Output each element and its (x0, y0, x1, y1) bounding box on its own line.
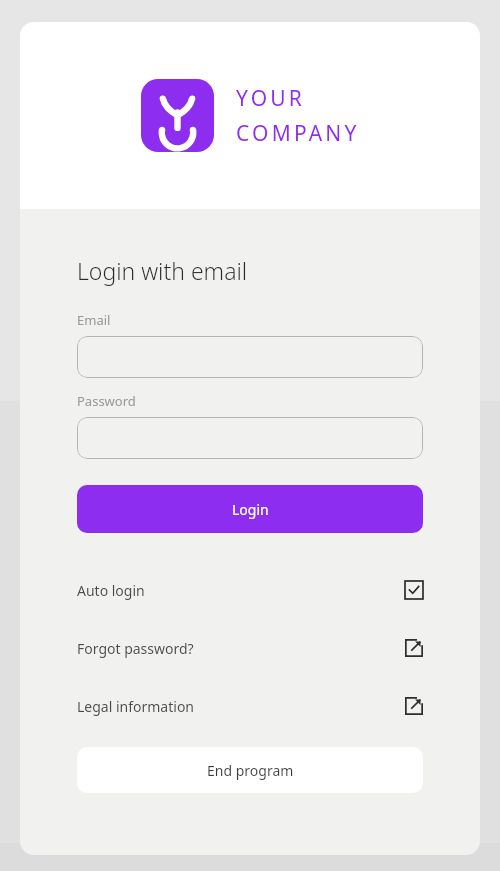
staticText: Login with email (77, 255, 248, 286)
button[interactable]: End program (77, 747, 423, 793)
staticText: Email (77, 311, 111, 329)
staticText: COMPANY (236, 119, 360, 148)
staticText: End program (207, 761, 294, 780)
other: Open link (405, 697, 423, 715)
button[interactable]: Auto login (77, 575, 423, 605)
button[interactable] (77, 336, 423, 378)
button[interactable] (77, 417, 423, 459)
staticText: YOUR (236, 84, 306, 113)
other: Company logo (141, 79, 214, 152)
staticText: Password (77, 392, 136, 410)
other: Auto login checkbox (405, 581, 423, 599)
button[interactable]: Forgot password? (77, 633, 423, 663)
other: Open link (405, 639, 423, 657)
button[interactable]: Legal information (77, 691, 423, 721)
staticText: Legal information (77, 697, 405, 716)
button[interactable]: Login (77, 485, 423, 533)
staticText: Forgot password? (77, 639, 405, 658)
staticText: Auto login (77, 581, 405, 600)
staticText: Login (232, 500, 269, 519)
